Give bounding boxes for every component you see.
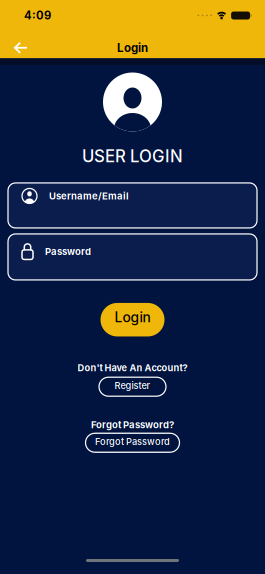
staticText: Forgot Password xyxy=(95,436,170,447)
button[interactable]: Register xyxy=(99,377,166,396)
staticText: Register xyxy=(114,380,150,391)
button[interactable]: Password xyxy=(8,234,257,280)
staticText: Username/Email xyxy=(49,190,129,201)
button[interactable]: Back xyxy=(0,38,28,58)
staticText: Password xyxy=(45,246,91,257)
staticText: USER LOGIN xyxy=(82,146,183,166)
staticText: Forgot Password? xyxy=(91,419,174,430)
button[interactable]: Username/Email xyxy=(8,183,257,228)
staticText: 4:09 xyxy=(24,9,51,22)
staticText: Don't Have An Account? xyxy=(77,362,187,373)
button[interactable]: Forgot Password xyxy=(85,433,179,452)
staticText: Login xyxy=(117,41,148,54)
staticText: Login xyxy=(114,309,150,325)
button[interactable]: Login xyxy=(100,303,164,336)
